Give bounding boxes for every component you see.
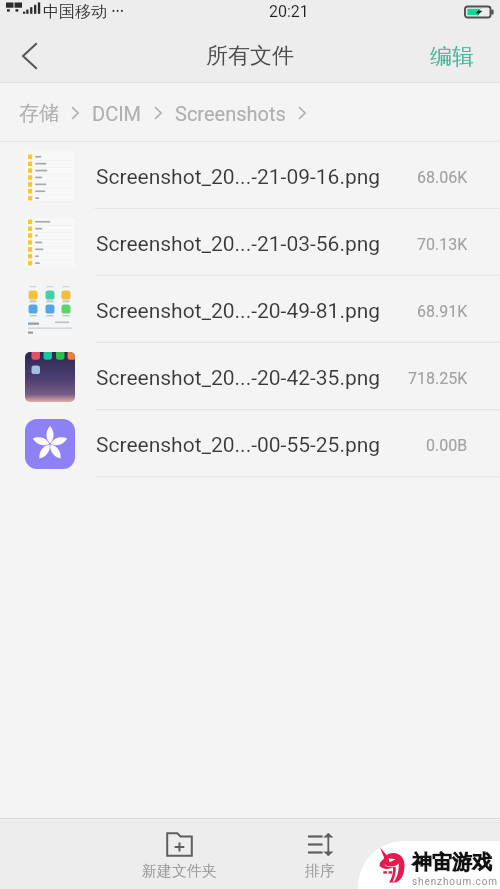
staticText: Screenshot_20...-21-03-56.png (96, 232, 381, 257)
staticText: 中国移动 ··· (43, 0, 125, 22)
staticText: 排序 (305, 862, 335, 881)
staticText: 70.13K (417, 235, 468, 254)
staticText: 0.00B (426, 436, 468, 455)
staticText: shenzhoum.com (412, 876, 498, 888)
button[interactable]: Screenshots (175, 101, 286, 124)
staticText: 更多 (413, 862, 443, 881)
button[interactable]: 编辑 (404, 28, 500, 83)
button[interactable]: 新建文件夹 (129, 819, 229, 889)
button[interactable]: Screenshot_20...-21-03-56.png (0, 209, 500, 276)
staticText: DCIM (92, 102, 142, 125)
staticText: Screenshot_20...-21-09-16.png (96, 165, 381, 190)
staticText: 神宙游戏 (412, 850, 492, 875)
staticText: Screenshots (175, 102, 286, 125)
button[interactable]: Screenshot_20...-21-09-16.png (0, 142, 500, 209)
staticText: 20:21 (269, 2, 309, 21)
button[interactable]: 排序 (270, 819, 370, 889)
button[interactable]: Screenshot_20...-20-49-81.png (0, 276, 500, 343)
staticText: 所有文件 (206, 42, 294, 70)
staticText: Screenshot_20...-00-55-25.png (96, 433, 381, 458)
button[interactable]: 更多 (378, 819, 478, 889)
button[interactable]: DCIM (92, 101, 142, 124)
staticText: 718.25K (408, 369, 468, 388)
button[interactable]: Back (0, 28, 58, 83)
button[interactable]: Screenshot_20...-00-55-25.png (0, 410, 500, 477)
staticText: 编辑 (430, 43, 474, 71)
staticText: 新建文件夹 (142, 862, 217, 881)
staticText: 68.06K (417, 168, 468, 187)
staticText: 存储 (19, 101, 59, 126)
staticText: 68.91K (417, 302, 468, 321)
staticText: Screenshot_20...-20-49-81.png (96, 299, 381, 324)
staticText: Screenshot_20...-20-42-35.png (96, 366, 381, 391)
button[interactable]: Screenshot_20...-20-42-35.png (0, 343, 500, 410)
button[interactable]: 存储 (19, 100, 59, 125)
